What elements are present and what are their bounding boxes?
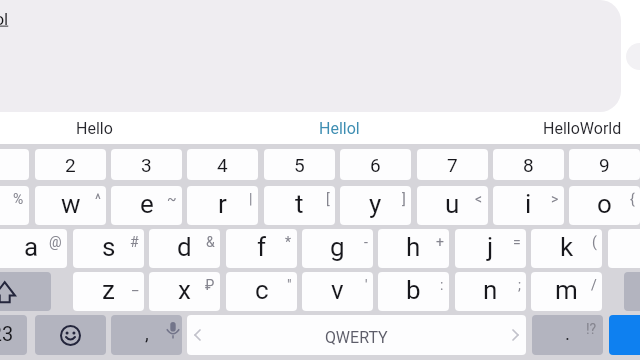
button[interactable]: 9 bbox=[569, 149, 640, 180]
button[interactable]: 3 bbox=[111, 149, 182, 180]
staticText: / bbox=[591, 277, 597, 293]
button[interactable]: s bbox=[73, 229, 144, 268]
staticText: o bbox=[597, 189, 612, 219]
button[interactable]: Emoji bbox=[35, 315, 106, 355]
staticText: w bbox=[61, 189, 81, 219]
staticText: a bbox=[24, 232, 39, 262]
staticText: r bbox=[218, 189, 227, 219]
staticText: ₽ bbox=[205, 277, 215, 293]
staticText: e bbox=[140, 189, 154, 219]
button[interactable]: Hello bbox=[0, 112, 216, 145]
staticText: t bbox=[295, 189, 304, 219]
button[interactable]: q bbox=[0, 186, 29, 225]
staticText: [ bbox=[326, 191, 330, 207]
staticText: # bbox=[130, 234, 139, 250]
button[interactable]: 4 bbox=[187, 149, 258, 180]
button[interactable]: h bbox=[378, 229, 449, 268]
staticText: Hello bbox=[76, 119, 113, 138]
staticText: s bbox=[102, 232, 116, 262]
button[interactable]: Enter bbox=[609, 315, 640, 355]
staticText: ; bbox=[518, 277, 521, 293]
button[interactable]: t bbox=[264, 186, 335, 225]
staticText: b bbox=[406, 275, 421, 305]
staticText: @ bbox=[49, 234, 62, 250]
staticText: 3 bbox=[141, 154, 152, 176]
staticText: = bbox=[513, 234, 521, 250]
button[interactable]: e bbox=[111, 186, 182, 225]
staticText: i bbox=[525, 189, 532, 219]
staticText: g bbox=[330, 232, 345, 262]
staticText: y bbox=[369, 189, 382, 219]
button[interactable]: k bbox=[531, 229, 602, 268]
button[interactable]: Send bbox=[626, 43, 640, 70]
button[interactable]: Symbols bbox=[0, 315, 27, 355]
staticText: ] bbox=[402, 191, 406, 207]
button[interactable]: 5 bbox=[264, 149, 335, 180]
button[interactable]: 8 bbox=[493, 149, 564, 180]
button[interactable]: x bbox=[149, 272, 220, 311]
button[interactable]: i bbox=[493, 186, 564, 225]
staticText: 9 bbox=[599, 154, 610, 176]
button[interactable]: v bbox=[302, 272, 373, 311]
staticText: k bbox=[560, 232, 574, 262]
staticText: !? bbox=[586, 321, 597, 337]
staticText: m bbox=[555, 275, 578, 305]
button[interactable]: 2 bbox=[35, 149, 106, 180]
button[interactable]: r bbox=[187, 186, 258, 225]
button[interactable]: y bbox=[340, 186, 411, 225]
button[interactable]: a bbox=[0, 229, 67, 268]
staticText: Hellol bbox=[319, 119, 360, 138]
staticText: % bbox=[13, 191, 24, 207]
button[interactable]: m bbox=[531, 272, 602, 311]
staticText: 4 bbox=[217, 154, 228, 176]
button[interactable]: Period bbox=[532, 315, 603, 355]
staticText: < bbox=[475, 191, 483, 207]
staticText: d bbox=[177, 232, 192, 262]
button[interactable]: Space bbox=[187, 315, 526, 355]
button[interactable]: j bbox=[455, 229, 526, 268]
staticText: , bbox=[145, 322, 149, 344]
button[interactable]: Shift bbox=[0, 272, 51, 311]
button[interactable]: HelloWorld bbox=[432, 112, 640, 145]
staticText: ~ bbox=[167, 191, 177, 207]
staticText: Hellol bbox=[0, 9, 9, 29]
button[interactable]: f bbox=[226, 229, 297, 268]
button[interactable]: u bbox=[417, 186, 488, 225]
staticText: u bbox=[445, 189, 460, 219]
staticText: ' bbox=[365, 277, 368, 293]
button[interactable]: g bbox=[302, 229, 373, 268]
staticText: j bbox=[487, 232, 494, 262]
button[interactable]: o bbox=[569, 186, 640, 225]
button[interactable]: Hellol bbox=[216, 112, 432, 145]
button[interactable]: c bbox=[226, 272, 297, 311]
staticText: h bbox=[406, 232, 421, 262]
button[interactable]: Comma bbox=[111, 315, 182, 355]
staticText: QWERTY bbox=[325, 328, 388, 347]
button[interactable]: d bbox=[149, 229, 220, 268]
button[interactable]: 7 bbox=[417, 149, 488, 180]
staticText: ^ bbox=[95, 191, 101, 207]
button[interactable]: b bbox=[378, 272, 449, 311]
staticText: 6 bbox=[370, 154, 381, 176]
staticText: f bbox=[257, 232, 267, 262]
button[interactable]: w bbox=[35, 186, 106, 225]
staticText: { bbox=[630, 191, 635, 207]
staticText: " bbox=[287, 277, 292, 293]
staticText: | bbox=[249, 191, 253, 207]
staticText: 8 bbox=[523, 154, 534, 176]
staticText: x bbox=[178, 275, 191, 305]
staticText: & bbox=[206, 234, 215, 250]
staticText: - bbox=[364, 234, 368, 250]
staticText: : bbox=[440, 277, 444, 293]
staticText: z bbox=[102, 275, 115, 305]
button[interactable]: 6 bbox=[340, 149, 411, 180]
staticText: 7 bbox=[447, 154, 458, 176]
staticText: + bbox=[436, 234, 444, 250]
staticText: HelloWorld bbox=[543, 119, 622, 138]
button[interactable]: n bbox=[455, 272, 526, 311]
button[interactable]: z bbox=[73, 272, 144, 311]
